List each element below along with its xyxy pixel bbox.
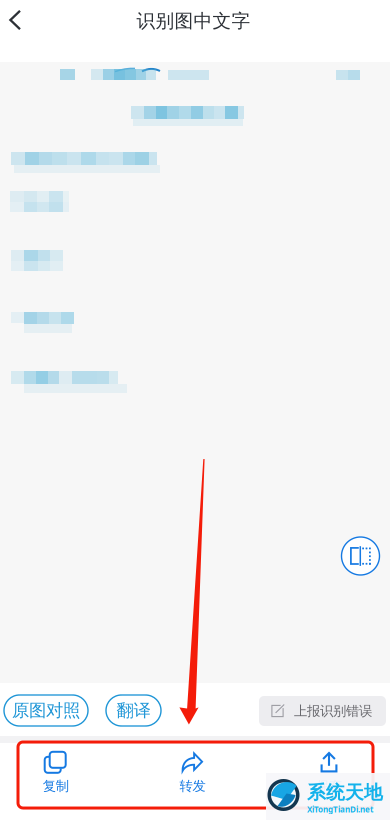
staticText: 复制: [43, 778, 69, 794]
staticText: 转发: [179, 778, 205, 794]
button[interactable]: 转发: [132, 749, 252, 797]
staticText: 保存: [316, 778, 342, 794]
staticText: 上报识别错误: [294, 703, 372, 719]
staticText: 原图对照: [12, 700, 80, 721]
button[interactable]: 原图对照: [4, 695, 88, 726]
staticText: 翻译: [116, 700, 150, 721]
button[interactable]: 保存: [269, 749, 389, 797]
staticText: 系统天地: [307, 781, 383, 804]
button[interactable]: 上报识别错误: [259, 696, 386, 726]
button[interactable]: Back: [0, 0, 31, 42]
button[interactable]: 翻译: [106, 695, 161, 726]
staticText: 识别图中文字: [136, 9, 250, 32]
staticText: XiTongTianDi.net: [307, 804, 373, 815]
button[interactable]: 复制: [0, 749, 116, 797]
button[interactable]: Compare with original: [341, 537, 379, 575]
